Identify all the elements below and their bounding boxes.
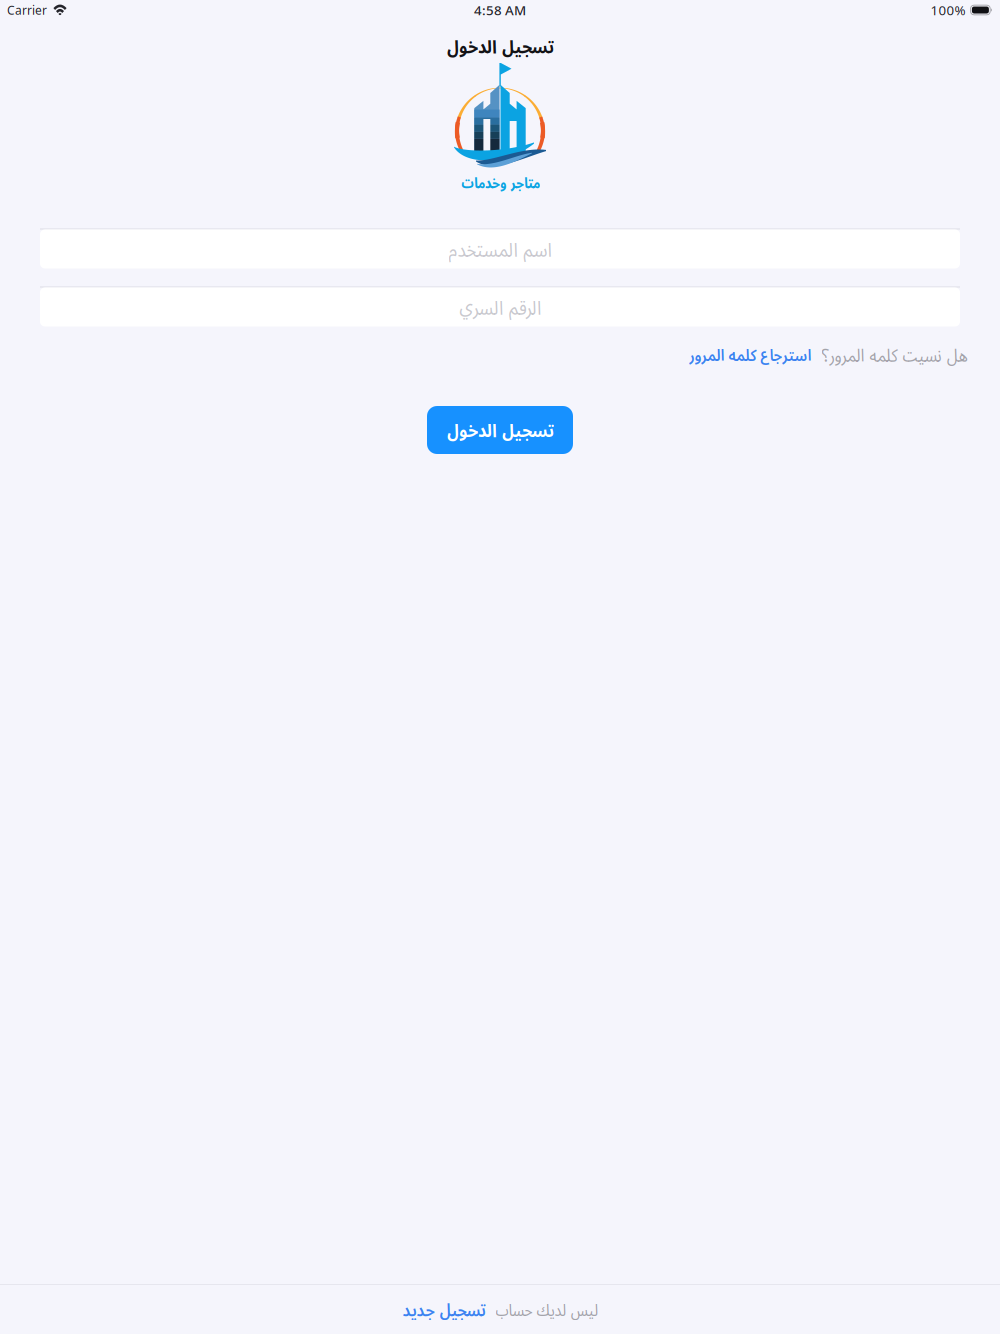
staticText: ليس لديك حساب	[495, 1298, 598, 1321]
staticText: تسجيل الدخول	[446, 34, 553, 58]
staticText: 100%	[931, 1, 966, 19]
staticText: اسم المستخدم	[448, 235, 552, 263]
staticText: هل نسيت كلمه المرور؟	[821, 342, 967, 367]
staticText: تسجيل جديد	[402, 1298, 485, 1321]
button[interactable]: تسجيل جديد	[402, 1298, 485, 1321]
staticText: الرقم السري	[458, 293, 541, 321]
staticText: 4:58 AM	[474, 1, 526, 19]
staticText: متاجر وخدمات	[460, 172, 539, 192]
button[interactable]: استرجاع كلمه المرور	[689, 344, 811, 366]
staticText: استرجاع كلمه المرور	[689, 344, 811, 366]
staticText: Carrier	[7, 2, 47, 18]
staticText: تسجيل الدخول	[446, 418, 553, 442]
button[interactable]: تسجيل الدخول	[427, 406, 573, 454]
